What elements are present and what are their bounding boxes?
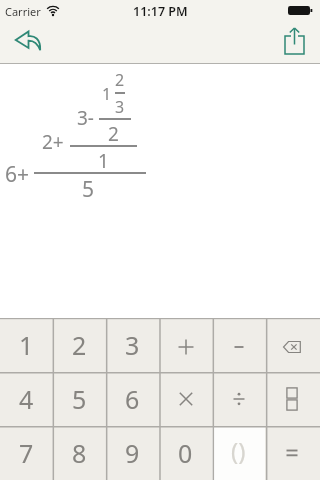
staticText: 2: [72, 328, 87, 362]
button[interactable]: [280, 22, 312, 60]
staticText: 0: [178, 436, 193, 470]
button[interactable]: [212, 372, 265, 426]
button[interactable]: [6, 26, 46, 62]
button[interactable]: 4: [0, 372, 53, 426]
button[interactable]: 6: [106, 372, 159, 426]
staticText: 6: [125, 382, 140, 416]
staticText: 5: [82, 175, 95, 204]
button[interactable]: (): [212, 426, 265, 480]
staticText: 8: [72, 436, 87, 470]
staticText: 2: [115, 69, 125, 91]
button[interactable]: [212, 318, 265, 372]
button[interactable]: 9: [106, 426, 159, 480]
button[interactable]: [265, 372, 318, 426]
button[interactable]: 5: [53, 372, 106, 426]
button[interactable]: 1: [0, 318, 53, 372]
staticText: 1: [102, 83, 112, 105]
staticText: Carrier: [5, 4, 41, 19]
staticText: 1: [98, 148, 109, 174]
button[interactable]: 2: [53, 318, 106, 372]
button[interactable]: 3: [106, 318, 159, 372]
staticText: 2: [108, 121, 119, 147]
staticText: 3-: [77, 105, 94, 131]
button[interactable]: [159, 318, 212, 372]
button[interactable]: [265, 318, 318, 372]
staticText: 1: [19, 328, 34, 362]
staticText: 5: [72, 382, 87, 416]
button[interactable]: 7: [0, 426, 53, 480]
staticText: 7: [19, 436, 34, 470]
button[interactable]: 0: [159, 426, 212, 480]
staticText: 2+: [42, 129, 64, 155]
button[interactable]: [265, 426, 318, 480]
staticText: (): [231, 434, 246, 467]
staticText: 11:17 PM: [133, 3, 188, 20]
button[interactable]: 8: [53, 426, 106, 480]
staticText: 4: [19, 382, 34, 416]
staticText: 6+: [5, 160, 30, 189]
staticText: 3: [125, 328, 140, 362]
staticText: 3: [115, 96, 125, 118]
staticText: 9: [125, 436, 140, 470]
button[interactable]: [159, 372, 212, 426]
